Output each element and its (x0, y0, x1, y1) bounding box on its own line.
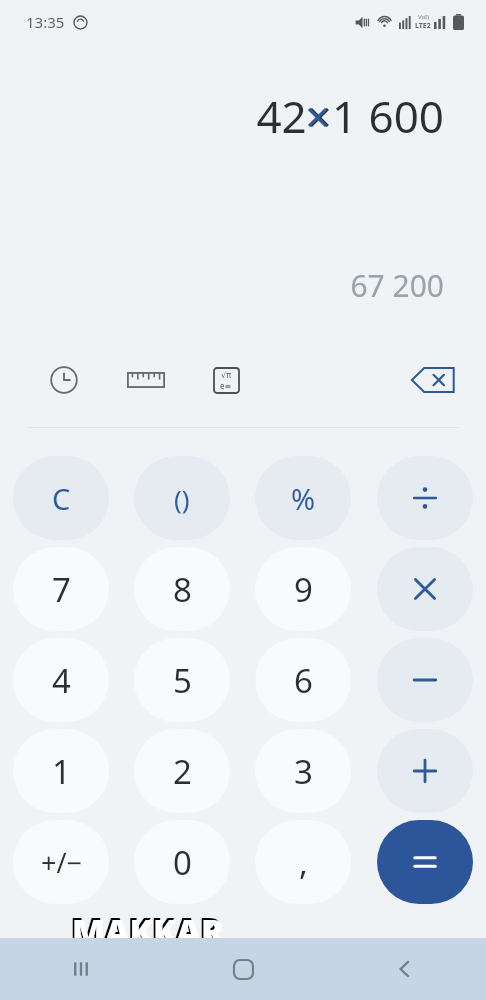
button[interactable]: Back (324, 938, 486, 1000)
staticText: VoI) (418, 13, 429, 21)
staticText: 42 (254, 86, 305, 146)
staticText: 0 (173, 840, 192, 885)
button[interactable] (377, 729, 473, 813)
button[interactable]: 0 (134, 820, 230, 904)
button[interactable]: 3 (255, 729, 351, 813)
button[interactable]: Scientific functions (204, 358, 248, 402)
staticText: √π (221, 369, 232, 380)
button[interactable]: History (42, 358, 86, 402)
staticText: e≡ (220, 380, 232, 391)
button[interactable]: Home (162, 938, 324, 1000)
staticText: () (174, 481, 190, 516)
button[interactable] (377, 820, 473, 904)
button[interactable] (377, 547, 473, 631)
button[interactable]: +/− (13, 820, 109, 904)
button[interactable]: 6 (255, 638, 351, 722)
button[interactable]: 9 (255, 547, 351, 631)
button[interactable] (377, 638, 473, 722)
staticText: × (305, 86, 331, 146)
button[interactable]: 5 (134, 638, 230, 722)
staticText: MAKKAR (72, 908, 224, 954)
staticText: 67 200 (350, 265, 444, 306)
button[interactable]: Unit converter (124, 358, 168, 402)
staticText: % (291, 479, 316, 518)
staticText: 6 (294, 658, 313, 703)
staticText: 3 (294, 749, 313, 794)
button[interactable]: C (13, 456, 109, 540)
staticText: MAKKAR (70, 906, 222, 952)
staticText: 1 600 (331, 86, 444, 146)
button[interactable]: 4 (13, 638, 109, 722)
button[interactable]: () (134, 456, 230, 540)
staticText: 5 (173, 658, 192, 703)
staticText: 7 (52, 567, 71, 612)
button[interactable]: , (255, 820, 351, 904)
staticText: C (52, 479, 71, 518)
staticText: 2 (173, 749, 192, 794)
button[interactable]: % (255, 456, 351, 540)
button[interactable]: 2 (134, 729, 230, 813)
staticText: LTE2 (415, 21, 431, 31)
button[interactable]: Recent apps (0, 938, 162, 1000)
staticText: 4 (52, 658, 71, 703)
staticText: , (299, 840, 308, 885)
button[interactable]: Backspace (406, 353, 460, 407)
staticText: 42×1 600 (256, 86, 444, 146)
staticText: 8 (173, 567, 192, 612)
button[interactable] (377, 456, 473, 540)
button[interactable]: 1 (13, 729, 109, 813)
staticText: +/− (41, 844, 82, 881)
button[interactable]: 8 (134, 547, 230, 631)
button[interactable]: 7 (13, 547, 109, 631)
staticText: 1 (52, 749, 71, 794)
staticText: 9 (294, 567, 313, 612)
staticText: 13:35 (26, 12, 65, 32)
